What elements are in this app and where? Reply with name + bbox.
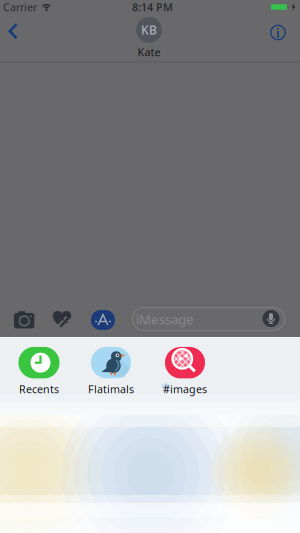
button[interactable]: Digital Touch <box>52 310 71 329</box>
button[interactable]: Kate <box>136 17 162 59</box>
staticText: Recents <box>19 382 59 396</box>
staticText: 8:14 PM <box>132 0 173 14</box>
staticText: Carrier <box>3 0 37 14</box>
button[interactable]: Apps <box>91 310 115 330</box>
button[interactable]: Flatimals <box>88 347 134 396</box>
button[interactable]: Details <box>270 24 286 40</box>
button[interactable]: iMessage <box>132 307 285 331</box>
staticText: i <box>276 24 280 42</box>
staticText: iMessage <box>136 310 194 328</box>
staticText: Flatimals <box>88 382 134 396</box>
button[interactable]: Camera <box>14 310 34 328</box>
staticText: #images <box>163 382 207 396</box>
button[interactable]: Back <box>3 18 23 44</box>
button[interactable]: #images <box>163 347 207 396</box>
button[interactable]: Recents <box>18 347 59 396</box>
staticText: KB <box>141 22 157 38</box>
staticText: Kate <box>137 45 160 59</box>
button[interactable]: Dictate <box>262 310 279 327</box>
